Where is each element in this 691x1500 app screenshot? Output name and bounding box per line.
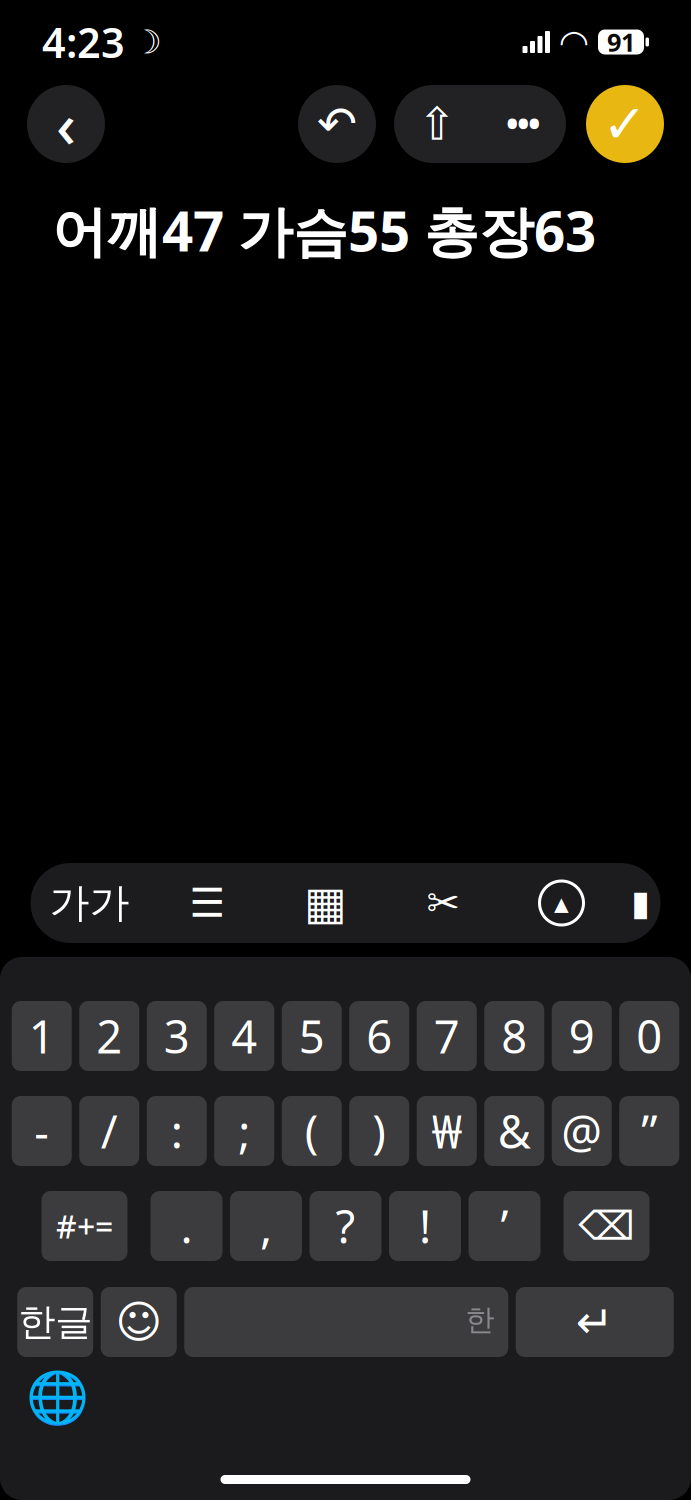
button[interactable]: . — [150, 1191, 222, 1261]
staticText: 0 — [636, 1006, 662, 1066]
staticText: ☰ — [189, 880, 225, 926]
button[interactable]: 0 — [619, 1001, 679, 1071]
staticText: ! — [419, 1196, 431, 1256]
button[interactable]: 6 — [349, 1001, 409, 1071]
staticText: 5 — [299, 1006, 325, 1066]
button[interactable]: Checklist — [148, 863, 266, 943]
staticText: 7 — [434, 1006, 460, 1066]
staticText: ₩ — [432, 1101, 462, 1161]
staticText: ✓ — [602, 94, 647, 154]
button[interactable]: ; — [214, 1096, 274, 1166]
staticText: ‹ — [56, 83, 76, 165]
staticText: & — [498, 1101, 531, 1161]
button[interactable]: , — [230, 1191, 302, 1261]
staticText: 6 — [366, 1006, 392, 1066]
button[interactable]: : — [147, 1096, 207, 1166]
staticText: 1 — [29, 1006, 55, 1066]
button[interactable]: 3 — [147, 1001, 207, 1071]
staticText: ▴ — [554, 886, 569, 920]
staticText: ; — [238, 1101, 250, 1161]
staticText: 한 — [465, 1302, 494, 1338]
staticText: , — [260, 1196, 272, 1256]
staticText: ☺ — [115, 1296, 162, 1348]
button[interactable]: return — [516, 1287, 674, 1357]
staticText: ⌫ — [578, 1203, 635, 1249]
button[interactable]: ! — [389, 1191, 461, 1261]
button[interactable]: @ — [552, 1096, 612, 1166]
staticText: ’ — [500, 1196, 508, 1256]
staticText: ☽ — [132, 23, 162, 61]
staticText: ••• — [506, 104, 539, 143]
staticText: 91 — [607, 25, 635, 59]
staticText: / — [101, 1101, 118, 1161]
staticText: 어깨47 가슴55 총장63 — [52, 194, 596, 267]
staticText: - — [34, 1101, 49, 1161]
staticText: ( — [305, 1101, 319, 1161]
button[interactable]: 9 — [552, 1001, 612, 1071]
button[interactable]: Text format — [30, 863, 148, 943]
button[interactable]: Share — [394, 85, 480, 163]
button[interactable]: 4 — [214, 1001, 274, 1071]
button[interactable]: ⌫ — [563, 1191, 649, 1261]
staticText: ) — [372, 1101, 386, 1161]
button[interactable]: ₩ — [417, 1096, 477, 1166]
staticText: 3 — [164, 1006, 190, 1066]
staticText: : — [171, 1101, 183, 1161]
staticText: . — [180, 1196, 192, 1256]
staticText: ↶ — [317, 97, 357, 151]
staticText: ↵ — [576, 1296, 614, 1348]
staticText: ” — [641, 1101, 657, 1161]
staticText: 🌐 — [25, 1369, 88, 1427]
button[interactable]: 8 — [484, 1001, 544, 1071]
staticText: ⇧ — [418, 98, 456, 150]
button[interactable]: ” — [619, 1096, 679, 1166]
button[interactable]: - — [12, 1096, 72, 1166]
button[interactable]: ’ — [468, 1191, 540, 1261]
button[interactable]: Markup — [502, 863, 620, 943]
staticText: ✂ — [426, 880, 460, 926]
button[interactable]: Emoji — [101, 1287, 177, 1357]
button[interactable]: 한글 — [17, 1287, 93, 1357]
staticText: 4:23 — [42, 15, 125, 69]
button[interactable]: More tools — [620, 863, 660, 943]
button[interactable]: 7 — [417, 1001, 477, 1071]
staticText: 한글 — [18, 1299, 92, 1345]
staticText: 4 — [231, 1006, 257, 1066]
staticText: 2 — [96, 1006, 122, 1066]
button[interactable]: ( — [282, 1096, 342, 1166]
button[interactable]: / — [79, 1096, 139, 1166]
button[interactable]: Next keyboard — [22, 1363, 92, 1433]
button[interactable]: Undo — [298, 85, 376, 163]
button[interactable]: 5 — [282, 1001, 342, 1071]
button[interactable]: ? — [309, 1191, 381, 1261]
staticText: ◠ — [560, 22, 587, 62]
staticText: 9 — [569, 1006, 595, 1066]
button[interactable]: Done — [586, 85, 664, 163]
button[interactable]: Attach — [384, 863, 502, 943]
button[interactable]: Table — [266, 863, 384, 943]
staticText: 8 — [501, 1006, 527, 1066]
staticText: #+= — [56, 1205, 113, 1247]
staticText: ▮ — [631, 883, 650, 923]
button[interactable]: 1 — [12, 1001, 72, 1071]
button[interactable]: 2 — [79, 1001, 139, 1071]
staticText: ? — [335, 1196, 355, 1256]
button[interactable]: More — [480, 85, 566, 163]
button[interactable]: #+= — [41, 1191, 127, 1261]
staticText: 가가 — [49, 878, 129, 927]
button[interactable]: Back — [27, 85, 105, 163]
button[interactable]: ) — [349, 1096, 409, 1166]
button[interactable]: & — [484, 1096, 544, 1166]
staticText: ▦ — [304, 877, 347, 929]
button[interactable]: space — [184, 1287, 508, 1357]
staticText: @ — [561, 1101, 602, 1161]
